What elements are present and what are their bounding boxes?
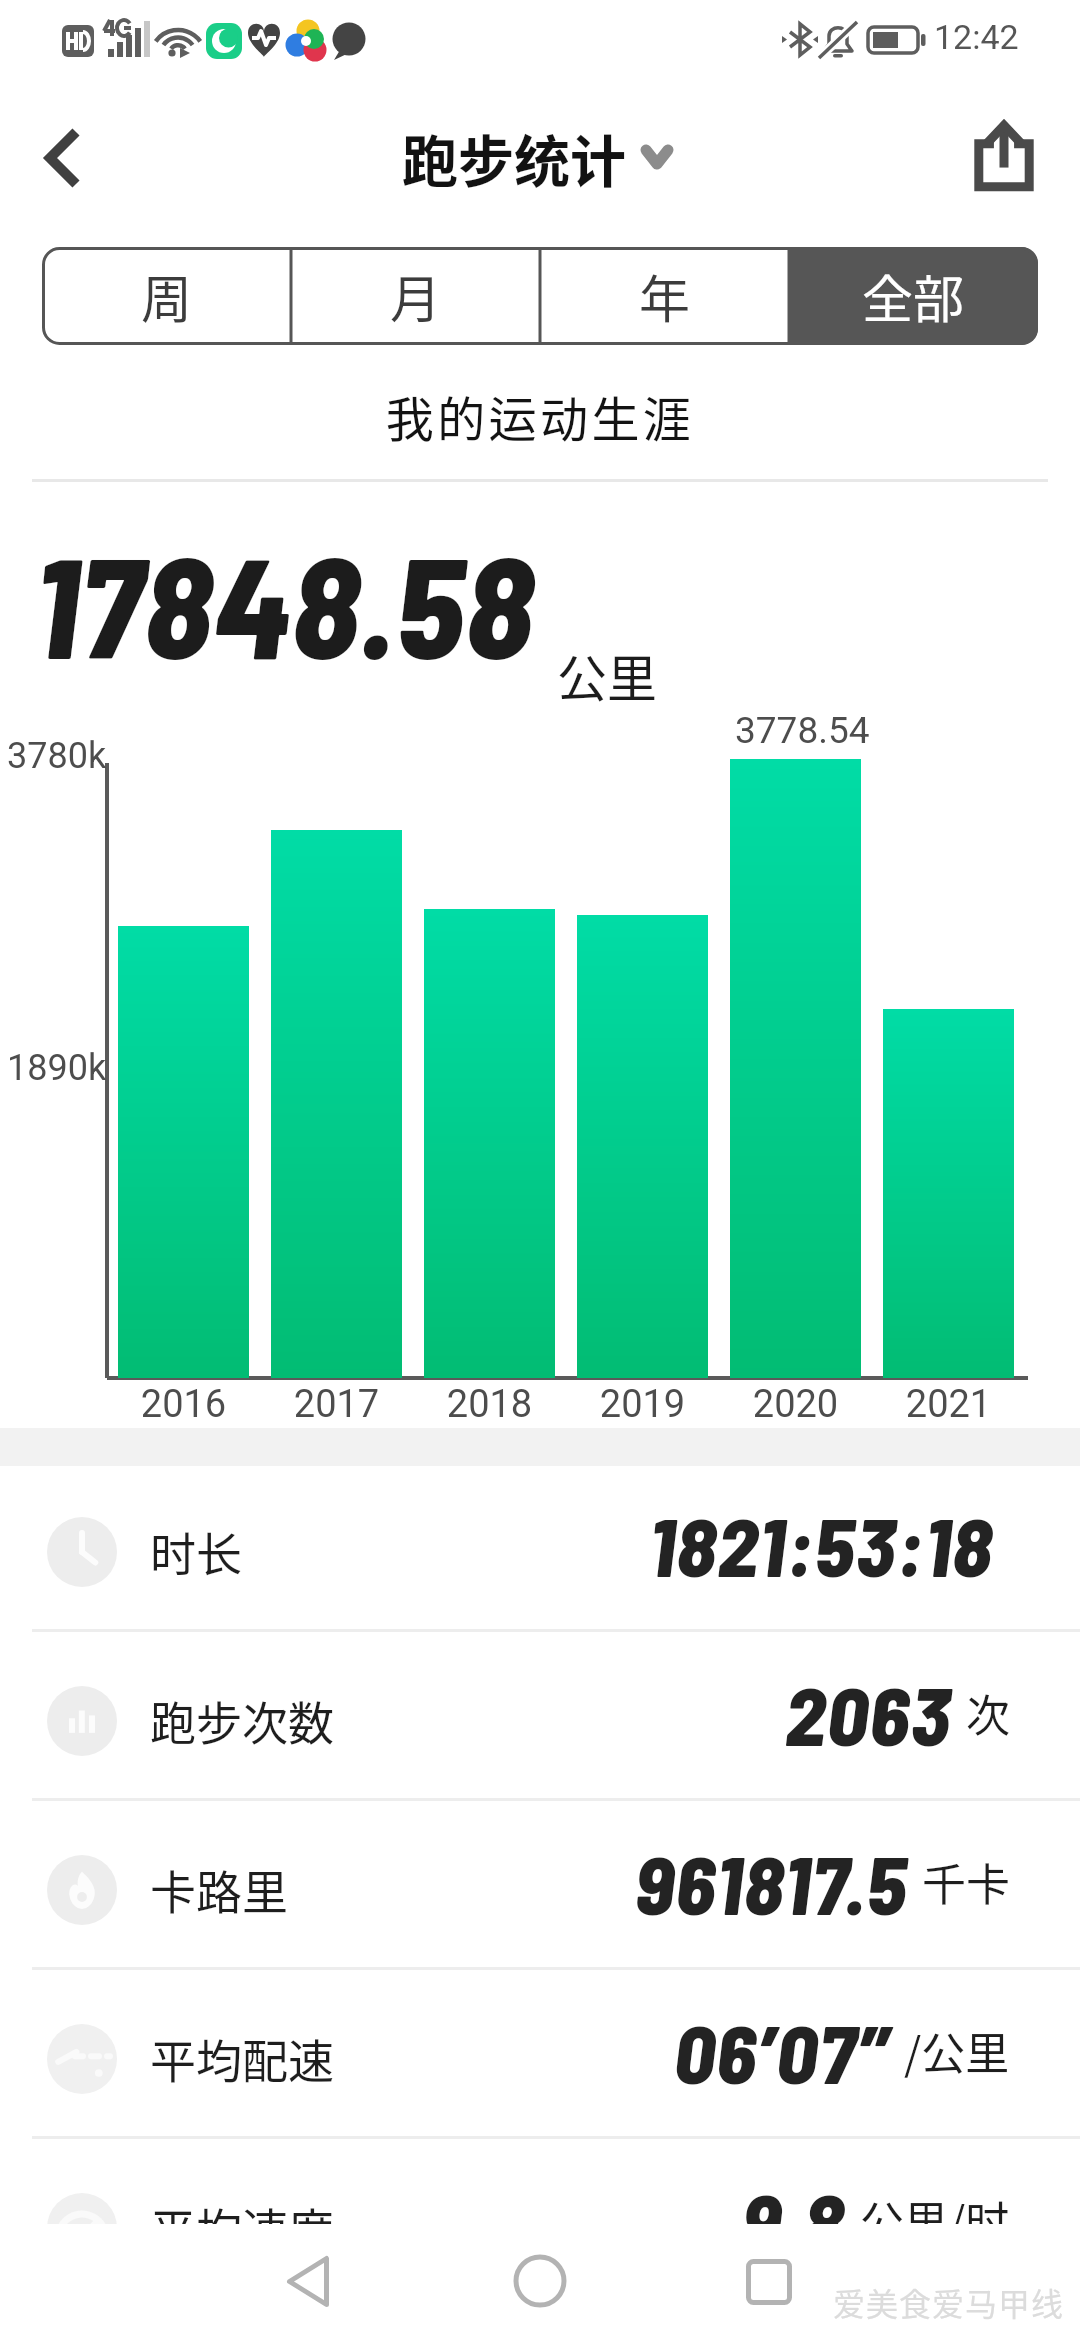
button[interactable]: Share <box>948 102 1064 216</box>
staticText: 时长 <box>150 1518 242 1585</box>
staticText: 跑步次数 <box>150 1687 334 1754</box>
staticText: 2018 <box>424 1382 555 1427</box>
staticText: 我的运动生涯 <box>0 381 1080 451</box>
staticText: 平均配速 <box>150 2025 334 2092</box>
staticText: 2063 <box>785 1664 952 1762</box>
button[interactable]: Back <box>16 102 136 216</box>
button[interactable]: 平均速度 <box>0 2139 1080 2308</box>
button[interactable]: 时长 <box>0 1463 1080 1632</box>
button[interactable]: Back <box>264 2237 352 2325</box>
staticText: 17848.58 <box>34 519 535 687</box>
button[interactable]: Recents <box>725 2238 813 2326</box>
staticText: 2020 <box>730 1382 861 1427</box>
staticText: 9.8 <box>742 2171 846 2269</box>
staticText: 年 <box>639 259 691 333</box>
staticText: 次 <box>966 1681 1010 1745</box>
button[interactable]: 年 <box>540 247 789 345</box>
staticText: 1821:53:18 <box>649 1495 994 1593</box>
button[interactable]: 周 <box>42 247 291 345</box>
staticText: 平均速度 <box>150 2194 334 2261</box>
staticText: 12:42 <box>934 17 1019 57</box>
button[interactable]: 跑步次数 <box>0 1632 1080 1801</box>
staticText: 公里 <box>557 639 657 711</box>
staticText: 公里/时 <box>860 2188 1010 2252</box>
staticText: 3780k <box>7 735 107 777</box>
staticText: 全部 <box>862 259 965 333</box>
button[interactable]: 平均配速 <box>0 1970 1080 2139</box>
button[interactable]: 月 <box>291 247 540 345</box>
staticText: 2021 <box>883 1382 1014 1427</box>
staticText: 千卡 <box>922 1850 1010 1914</box>
staticText: 周 <box>141 259 193 333</box>
staticText: 卡路里 <box>150 1856 288 1923</box>
staticText: 跑步统计 <box>402 117 626 198</box>
staticText: 961817.5 <box>635 1833 908 1931</box>
staticText: 1890k <box>7 1047 107 1089</box>
staticText: 2016 <box>118 1382 249 1427</box>
staticText: 爱美食爱马甲线 <box>833 2279 1065 2325</box>
staticText: 月 <box>390 259 442 333</box>
staticText: 2017 <box>271 1382 402 1427</box>
staticText: 06’07” <box>674 2002 890 2100</box>
staticText: /公里 <box>904 2019 1010 2083</box>
staticText: 2019 <box>577 1382 708 1427</box>
button[interactable]: 卡路里 <box>0 1801 1080 1970</box>
staticText: 3778.54 <box>735 709 870 752</box>
button[interactable]: 全部 <box>789 247 1038 345</box>
button[interactable]: Home <box>496 2237 584 2325</box>
